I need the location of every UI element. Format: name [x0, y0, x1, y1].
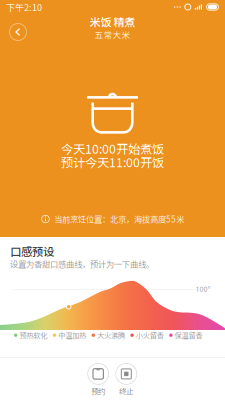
staticText: 当前烹饪位置：北京，海拔高度55米: [54, 213, 184, 225]
staticText: 今天10:00开始煮饭: [61, 139, 164, 157]
staticText: 五常大米: [94, 28, 130, 41]
staticText: 预热软化: [19, 330, 47, 340]
button[interactable]: 返回: [8, 22, 28, 42]
button[interactable]: 终止: [112, 363, 140, 395]
staticText: 预约: [91, 386, 105, 396]
staticText: 米饭 精煮: [89, 13, 135, 29]
staticText: 保温留香: [175, 330, 203, 340]
staticText: 100°: [195, 284, 210, 294]
button[interactable]: 预约: [84, 363, 112, 395]
staticText: 预计今天11:00开饭: [61, 153, 164, 171]
staticText: 小火留香: [136, 330, 164, 340]
staticText: 口感预设: [10, 243, 54, 259]
staticText: 设置为香甜口感曲线，预计为一下曲线。: [10, 258, 154, 270]
staticText: 中温加热: [58, 330, 86, 340]
staticText: 下午2:10: [6, 0, 42, 13]
staticText: 终止: [119, 386, 133, 396]
staticText: 大火沸腾: [97, 330, 125, 340]
